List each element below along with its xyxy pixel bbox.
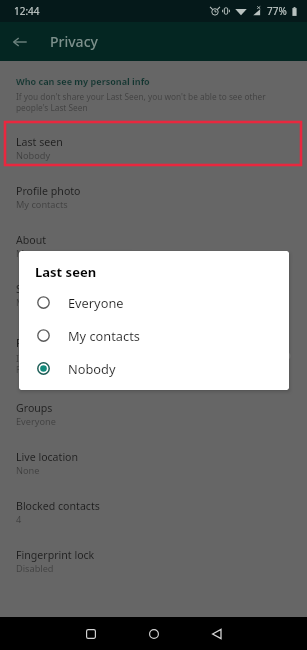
staticText: Fingerprint lock: [16, 548, 95, 562]
button[interactable]: Profile photo: [0, 174, 307, 223]
staticText: Status: [16, 282, 48, 296]
button[interactable]: Fingerprint lock: [0, 538, 307, 587]
staticText: Disabled: [16, 562, 54, 575]
button[interactable]: Nobody: [19, 352, 289, 385]
staticText: Everyone: [68, 294, 124, 311]
staticText: My contacts: [68, 327, 140, 344]
staticText: My contacts: [16, 198, 68, 211]
button[interactable]: Live location: [0, 440, 307, 489]
staticText: Privacy: [50, 32, 98, 51]
button[interactable]: Groups: [0, 391, 307, 440]
staticText: None: [16, 464, 40, 477]
staticText: Read receipts: [16, 336, 84, 350]
staticText: Profile photo: [16, 184, 81, 198]
staticText: About: [16, 233, 47, 247]
button[interactable]: Recent apps: [75, 617, 107, 650]
staticText: Nobody: [68, 360, 116, 377]
staticText: 4: [16, 513, 22, 526]
button[interactable]: Home: [138, 617, 170, 650]
button[interactable]: Read receipts: [0, 321, 307, 391]
staticText: 77%: [267, 4, 287, 18]
staticText: Live location: [16, 450, 79, 464]
staticText: Everyone: [16, 415, 56, 428]
button[interactable]: Last seen: [0, 125, 307, 174]
staticText: Last seen: [16, 135, 63, 149]
button[interactable]: Status: [0, 272, 307, 321]
staticText: Last seen: [35, 263, 97, 281]
button[interactable]: Back: [201, 617, 233, 650]
staticText: Nobody: [16, 149, 51, 162]
staticText: If you don't share your Last Seen, you w…: [16, 91, 272, 114]
button[interactable]: Back: [0, 22, 39, 61]
button[interactable]: Blocked contacts: [0, 489, 307, 538]
staticText: If turned off, you won't send or receive…: [16, 353, 231, 376]
staticText: My contacts: [16, 296, 68, 309]
button[interactable]: Everyone: [19, 286, 289, 319]
staticText: Blocked contacts: [16, 499, 100, 513]
button[interactable]: About: [0, 223, 307, 272]
staticText: Who can see my personal info: [16, 75, 150, 87]
button[interactable]: My contacts: [19, 319, 289, 352]
staticText: Groups: [16, 401, 53, 415]
staticText: My contacts: [16, 247, 68, 260]
staticText: 12:44: [14, 4, 40, 18]
